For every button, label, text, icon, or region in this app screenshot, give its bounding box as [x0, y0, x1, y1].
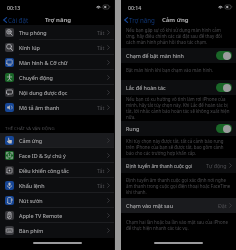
button[interactable]: Kính lúp [0, 40, 114, 55]
staticText: Tắt [97, 44, 105, 51]
staticText: Chạm để bật màn hình [126, 52, 184, 59]
staticText: 00:13 [7, 4, 21, 11]
button[interactable]: Chạm để bật màn hình [121, 48, 236, 63]
staticText: 00:14 [128, 4, 142, 11]
button[interactable]: Nội dung được đọc [0, 85, 114, 100]
button[interactable]: Trợ năng [124, 16, 155, 24]
staticText: Khi tùy chọn này được tắt, tất cả cảnh b… [126, 138, 231, 156]
staticText: Tắt [97, 104, 105, 111]
staticText: Khẩu lệnh [19, 182, 45, 189]
staticText: Trợ năng [45, 16, 72, 24]
button[interactable]: Nút sườn [0, 193, 114, 208]
staticText: Apple TV Remote [19, 212, 63, 219]
staticText: Màn hình & Cỡ chữ [19, 59, 68, 66]
staticText: Rung [126, 125, 140, 132]
staticText: Điều khiển công tắc [19, 167, 69, 174]
staticText: Tắt [97, 182, 105, 189]
staticText: Mô tả âm thanh [19, 104, 60, 111]
staticText: Tự động [206, 162, 227, 169]
button[interactable]: Chuyển động [0, 70, 114, 85]
button[interactable]: Điều khiển công tắc [0, 163, 114, 178]
staticText: Kính lúp [19, 44, 40, 51]
staticText: Thu phóng [19, 29, 47, 36]
button[interactable]: Rung [121, 121, 236, 136]
staticText: Bật màn hình khi bạn chạm vào màn hình. [126, 67, 231, 73]
button[interactable]: Chạm để bật màn hình [216, 51, 232, 60]
staticText: Face ID & Sự chú ý [19, 152, 66, 159]
button[interactable]: Face ID & Sự chú ý [0, 148, 114, 163]
staticText: Chuyển động [19, 74, 53, 81]
staticText: Trợ năng [129, 16, 155, 24]
staticText: Chạm vào mặt sau [126, 202, 173, 209]
button[interactable]: Bàn phím [0, 223, 114, 238]
staticText: Lắc để hoàn tác [126, 84, 166, 91]
staticText: Tắt [97, 167, 105, 174]
staticText: Nếu bạn gặp sự cố khi sử dụng màn hình c… [126, 27, 231, 45]
staticText: Bàn phím [19, 227, 44, 234]
staticText: THỂ CHẤT VÀ VẬN ĐỘNG [5, 125, 55, 131]
staticText: Cài đặt [8, 16, 29, 24]
button[interactable]: Định tuyến âm thanh cuộc gọi [121, 158, 236, 173]
button[interactable]: Mô tả âm thanh [0, 100, 114, 115]
staticText: Đặt [218, 202, 227, 209]
button[interactable]: Chạm vào mặt sau [121, 198, 236, 213]
staticText: Định tuyến âm thanh cuộc gọi [126, 163, 193, 169]
staticText: Chạm hai lần hoặc ba lần vào mặt sau của… [126, 219, 231, 231]
staticText: Nút sườn [19, 197, 43, 204]
button[interactable]: Cảm ứng [0, 133, 114, 148]
staticText: Cảm ứng [162, 16, 189, 24]
button[interactable]: Thu phóng [0, 25, 114, 40]
button[interactable]: Màn hình & Cỡ chữ [0, 55, 114, 70]
staticText: Tắt [97, 29, 105, 36]
button[interactable]: Khẩu lệnh [0, 178, 114, 193]
staticText: Định tuyến âm thanh cuộc gọi xác định nơ… [126, 177, 231, 195]
button[interactable]: Rung [216, 124, 232, 133]
button[interactable]: Apple TV Remote [0, 208, 114, 223]
staticText: Nếu bạn có xu hướng vô tình làm rơi iPho… [126, 96, 231, 120]
button[interactable]: Lắc để hoàn tác [121, 80, 236, 95]
staticText: Nội dung được đọc [19, 89, 68, 96]
button[interactable]: Cài đặt [3, 16, 29, 24]
button[interactable]: Lắc để hoàn tác [216, 83, 232, 92]
staticText: Cảm ứng [19, 137, 43, 144]
